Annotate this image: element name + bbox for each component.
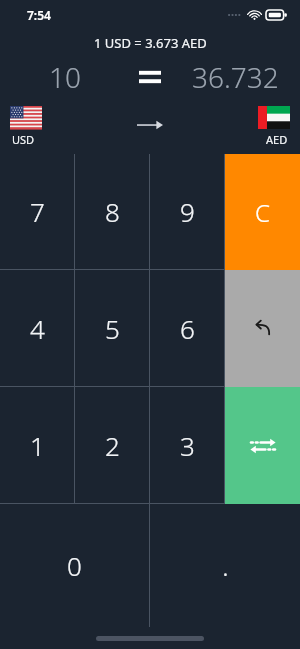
button[interactable]: 0 bbox=[0, 504, 149, 627]
staticText: 1 USD = 3.673 AED bbox=[94, 34, 207, 52]
button[interactable]: Backspace bbox=[225, 270, 300, 387]
staticText: . bbox=[222, 548, 229, 583]
button[interactable]: 9 bbox=[150, 154, 224, 269]
staticText: 10 bbox=[49, 58, 81, 96]
button[interactable]: 1 bbox=[0, 387, 74, 503]
button[interactable]: C bbox=[225, 154, 300, 270]
staticText: 3 bbox=[180, 428, 195, 463]
staticText: 7:54 bbox=[27, 7, 51, 23]
button[interactable]: 10 bbox=[0, 56, 130, 98]
staticText: 6 bbox=[180, 311, 195, 346]
staticText: 7 bbox=[30, 194, 45, 229]
button[interactable]: 6 bbox=[150, 270, 224, 386]
button[interactable]: 7 bbox=[0, 154, 74, 269]
button[interactable]: Swap currencies bbox=[225, 387, 300, 504]
button[interactable]: 8 bbox=[75, 154, 149, 269]
button[interactable]: USD bbox=[0, 98, 127, 154]
staticText: C bbox=[255, 196, 270, 229]
staticText: 9 bbox=[180, 194, 195, 229]
button[interactable]: 4 bbox=[0, 270, 74, 386]
staticText: 36.732 bbox=[192, 58, 279, 96]
staticText: 5 bbox=[105, 311, 120, 346]
staticText: 8 bbox=[105, 194, 120, 229]
other: Swap direction bbox=[137, 120, 163, 132]
staticText: USD bbox=[12, 132, 35, 147]
staticText: AED bbox=[266, 132, 288, 147]
button[interactable]: 3 bbox=[150, 387, 224, 503]
button[interactable]: 36.732 bbox=[170, 56, 300, 98]
staticText: 0 bbox=[67, 548, 82, 583]
button[interactable]: 2 bbox=[75, 387, 149, 503]
staticText: 1 bbox=[30, 428, 45, 463]
staticText: 2 bbox=[105, 428, 120, 463]
button[interactable]: . bbox=[150, 504, 300, 627]
button[interactable]: 5 bbox=[75, 270, 149, 386]
button[interactable]: AED bbox=[173, 98, 300, 154]
staticText: 4 bbox=[30, 311, 45, 346]
